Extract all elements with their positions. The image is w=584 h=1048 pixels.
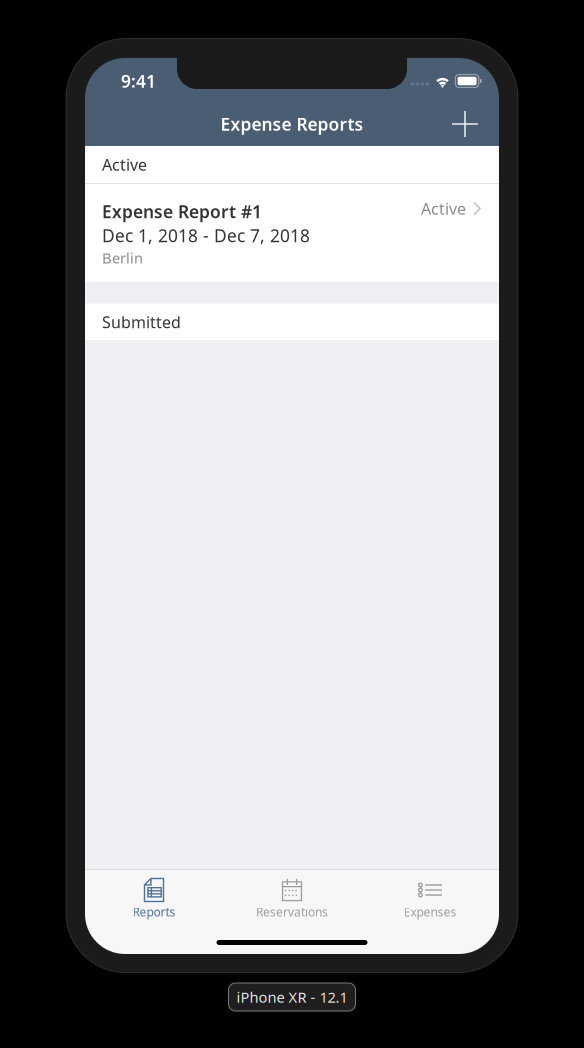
button[interactable]: Add report <box>443 102 487 146</box>
staticText: Reservations <box>256 904 328 920</box>
staticText: Active <box>102 154 147 175</box>
button[interactable]: Reservations <box>223 870 361 918</box>
staticText: Active <box>421 198 466 219</box>
staticText: Expense Report #1 <box>102 200 262 223</box>
staticText: Submitted <box>102 311 181 333</box>
button[interactable]: Expenses <box>361 870 499 918</box>
staticText: Expense Reports <box>220 112 363 135</box>
button[interactable]: Expense Report #1 <box>85 184 499 281</box>
button[interactable]: Reports <box>85 870 223 918</box>
staticText: Dec 1, 2018 - Dec 7, 2018 <box>102 224 310 247</box>
staticText: iPhone XR - 12.1 <box>236 987 347 1007</box>
staticText: Reports <box>132 904 175 920</box>
staticText: Berlin <box>102 248 143 267</box>
staticText: 9:41 <box>121 69 156 92</box>
staticText: Expenses <box>403 904 456 920</box>
